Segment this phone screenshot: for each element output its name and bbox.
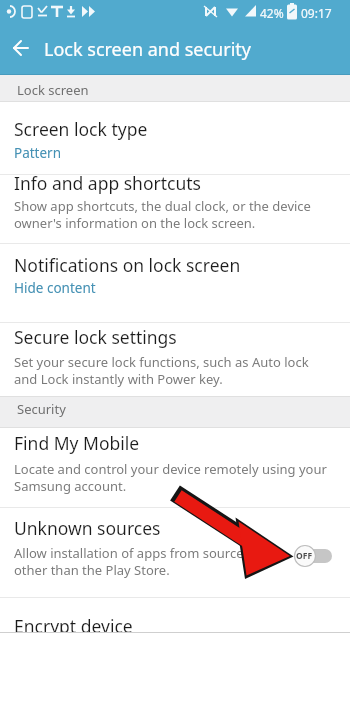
button[interactable]: [0, 244, 350, 322]
staticText: Unknown sources: [14, 516, 161, 540]
staticText: Find My Mobile: [14, 431, 140, 455]
staticText: Encrypt device: [14, 614, 133, 638]
button[interactable]: [0, 323, 350, 396]
staticText: Locate and control your device remotely …: [14, 460, 327, 495]
button[interactable]: [294, 545, 334, 567]
button[interactable]: [0, 428, 350, 507]
staticText: OFF: [296, 550, 313, 562]
staticText: 42%: [260, 5, 284, 21]
button[interactable]: [0, 102, 350, 174]
button[interactable]: Lock screen and security: [0, 25, 350, 75]
staticText: Notifications on lock screen: [14, 253, 241, 277]
staticText: Show app shortcuts, the dual clock, or t…: [14, 197, 311, 232]
staticText: Pattern: [14, 144, 62, 162]
staticText: Lock screen: [17, 81, 89, 99]
staticText: Info and app shortcuts: [14, 171, 201, 195]
staticText: Hide content: [14, 279, 96, 297]
staticText: Allow installation of apps from sources …: [14, 544, 250, 579]
button[interactable]: [0, 175, 350, 243]
staticText: Set your secure lock functions, such as …: [14, 353, 309, 388]
staticText: Lock screen and security: [44, 37, 251, 62]
staticText: Secure lock settings: [14, 325, 177, 349]
staticText: Security: [17, 400, 66, 418]
button[interactable]: [0, 508, 350, 597]
staticText: Screen lock type: [14, 117, 148, 141]
staticText: 09:17: [301, 5, 332, 21]
